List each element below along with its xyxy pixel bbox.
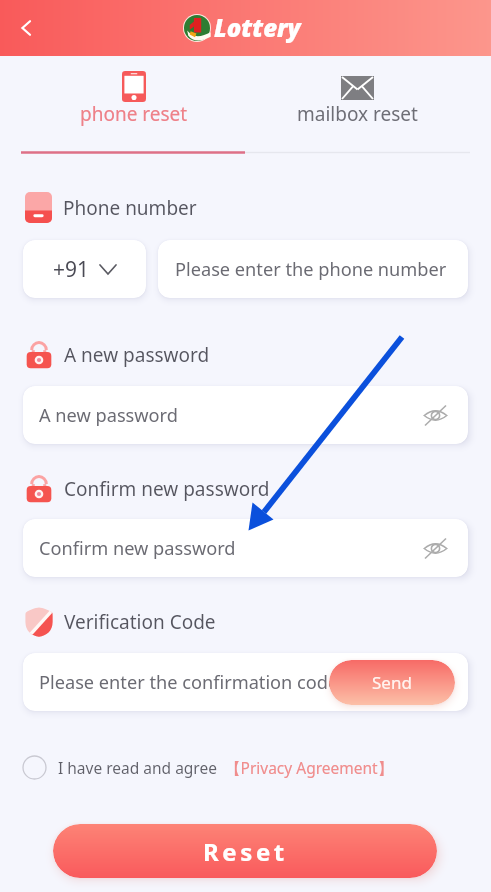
staticText: Confirm new password: [39, 536, 236, 561]
staticText: Phone number: [63, 195, 197, 221]
button[interactable]: I have read and agree: [22, 755, 394, 780]
staticText: Please enter the phone number: [175, 257, 447, 282]
button[interactable]: Please enter the phone number: [158, 240, 468, 298]
button[interactable]: Show password: [419, 532, 451, 564]
staticText: Lottery: [214, 11, 301, 44]
staticText: A new password: [39, 403, 178, 428]
button[interactable]: Confirm new password: [23, 519, 468, 577]
staticText: +91: [53, 255, 90, 284]
button[interactable]: 【Privacy Agreement】: [225, 757, 394, 778]
button[interactable]: A new password: [23, 386, 468, 444]
button[interactable]: Please enter the confirmation code: [23, 653, 468, 711]
staticText: A new password: [64, 342, 210, 368]
staticText: phone reset: [80, 101, 188, 127]
staticText: Verification Code: [64, 609, 216, 635]
button[interactable]: +91: [23, 240, 146, 298]
staticText: Please enter the confirmation code: [39, 670, 339, 695]
button[interactable]: phone reset: [23, 60, 247, 152]
staticText: Send: [372, 671, 412, 694]
button[interactable]: Send: [329, 660, 455, 705]
staticText: mailbox reset: [297, 101, 418, 127]
button[interactable]: Reset: [53, 824, 437, 878]
button[interactable]: Back: [6, 8, 46, 48]
button[interactable]: Show password: [419, 399, 451, 431]
button[interactable]: mailbox reset: [247, 60, 471, 152]
staticText: I have read and agree: [58, 757, 217, 778]
staticText: Confirm new password: [64, 476, 270, 502]
staticText: Reset: [203, 835, 288, 868]
